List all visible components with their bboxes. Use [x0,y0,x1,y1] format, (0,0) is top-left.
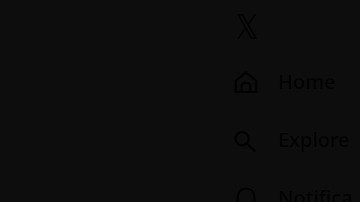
button[interactable]: X [237,14,257,39]
staticText: Notifications [278,184,360,202]
staticText: Explore [278,126,350,153]
staticText: Home [278,68,336,95]
